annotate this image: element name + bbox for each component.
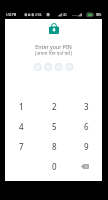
button[interactable]: 1	[5, 96, 38, 116]
button[interactable]: 6	[70, 116, 102, 136]
staticText: 1	[19, 101, 24, 112]
staticText: 3	[84, 101, 89, 112]
staticText: 6	[84, 121, 89, 132]
staticText: 10.5	[72, 13, 77, 16]
button[interactable]: 0	[38, 156, 70, 176]
button[interactable]: 3	[70, 96, 102, 116]
staticText: 4	[19, 121, 24, 132]
staticText: 8	[52, 141, 57, 152]
button[interactable]: 2	[38, 96, 70, 116]
staticText: 7	[19, 141, 24, 152]
button[interactable]: 9	[70, 136, 102, 156]
button[interactable]: 4	[5, 116, 38, 136]
staticText: 98%	[96, 13, 102, 17]
staticText: 2	[52, 101, 57, 112]
staticText: 9	[84, 141, 89, 152]
staticText: 0	[52, 161, 57, 172]
button[interactable]: Backspace	[70, 156, 102, 176]
staticText: 1:53 PM	[6, 13, 17, 17]
staticText: Enter your PIN	[5, 43, 102, 50]
button[interactable]: 7	[5, 136, 38, 156]
button[interactable]: 8	[38, 136, 70, 156]
staticText: 4G	[63, 13, 67, 17]
staticText: (अपना पिन दर्ज करें)	[5, 50, 102, 57]
staticText: 5	[52, 121, 57, 132]
staticText: LENA	[35, 13, 42, 17]
button[interactable]: 5	[38, 116, 70, 136]
